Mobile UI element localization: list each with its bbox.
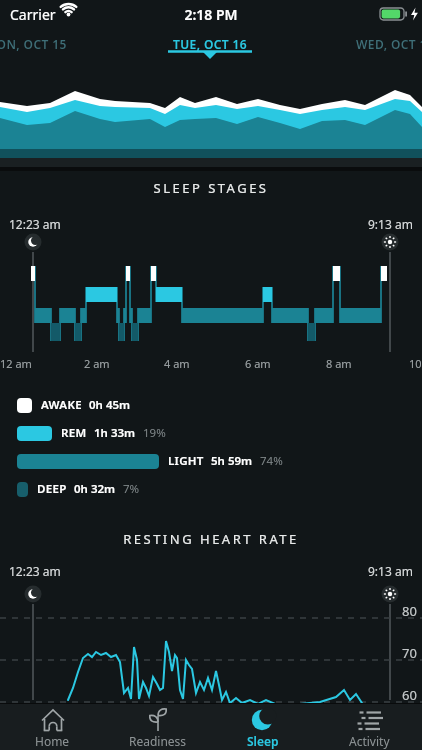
staticText: 0h 45m: [89, 397, 131, 413]
staticText: 0h 32m: [74, 481, 116, 497]
staticText: SLEEP STAGES: [0, 179, 422, 197]
staticText: 10 a: [409, 356, 422, 371]
staticText: 12 am: [0, 356, 32, 371]
button[interactable]: TUE, OCT 16: [160, 30, 260, 64]
staticText: 12:23 am: [9, 216, 61, 232]
staticText: Sleep: [247, 733, 279, 749]
button[interactable]: AWAKE: [17, 397, 131, 413]
button[interactable]: MON, OCT 15: [0, 36, 67, 52]
staticText: 19%: [143, 425, 166, 441]
staticText: Activity: [349, 733, 390, 749]
button[interactable]: Sleep: [210, 704, 316, 750]
staticText: 2 am: [84, 356, 110, 371]
staticText: 8 am: [326, 356, 352, 371]
staticText: 4 am: [164, 356, 190, 371]
staticText: 2:18 PM: [0, 5, 422, 24]
staticText: 12:23 am: [9, 563, 61, 579]
staticText: Readiness: [129, 733, 187, 749]
staticText: 9:13 am: [368, 216, 413, 232]
staticText: TUE, OCT 16: [173, 36, 248, 52]
staticText: RESTING HEART RATE: [0, 530, 422, 548]
staticText: Carrier: [10, 5, 56, 24]
staticText: 80: [402, 602, 417, 620]
staticText: Home: [35, 733, 70, 749]
button[interactable]: WED, OCT 1: [356, 36, 422, 52]
staticText: LIGHT: [168, 453, 204, 469]
staticText: REM: [61, 425, 87, 441]
staticText: 7%: [123, 481, 140, 497]
staticText: 9:13 am: [368, 563, 413, 579]
button[interactable]: REM: [17, 425, 166, 441]
button[interactable]: Home: [0, 704, 105, 750]
staticText: AWAKE: [41, 397, 82, 413]
staticText: 6 am: [245, 356, 271, 371]
staticText: 5h 59m: [211, 453, 253, 469]
button[interactable]: DEEP: [17, 481, 140, 497]
button[interactable]: Activity: [316, 704, 422, 750]
staticText: 1h 33m: [94, 425, 136, 441]
staticText: DEEP: [37, 481, 67, 497]
staticText: 74%: [260, 453, 283, 469]
button[interactable]: LIGHT: [17, 453, 283, 469]
staticText: 60: [402, 686, 417, 704]
staticText: 70: [402, 644, 417, 662]
button[interactable]: Readiness: [105, 704, 210, 750]
